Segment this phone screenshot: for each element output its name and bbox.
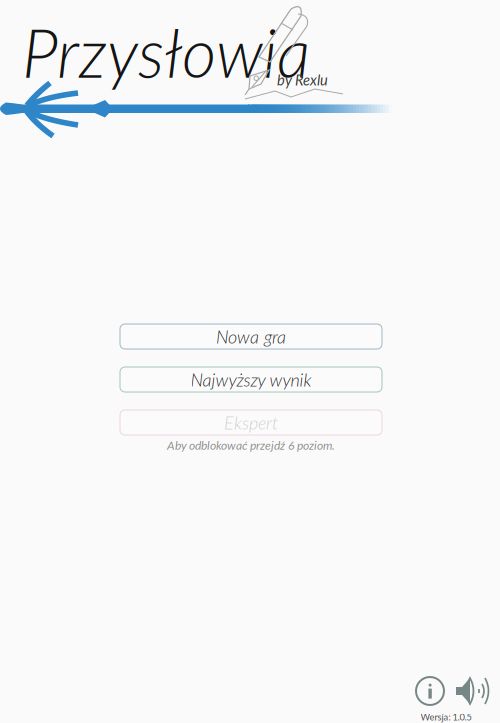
button[interactable]: Najwyższy wynik (120, 367, 382, 392)
staticText: Ekspert (224, 412, 278, 433)
button[interactable]: Ekspert (120, 410, 382, 435)
staticText: Najwyższy wynik (190, 369, 311, 390)
button[interactable]: Informacje (414, 675, 446, 707)
staticText: Aby odblokować przejdź 6 poziom. (167, 438, 335, 452)
button[interactable]: Dźwięk (455, 675, 493, 707)
staticText: Wersja: 1.0.5 (420, 711, 471, 723)
staticText: Nowa gra (216, 326, 286, 347)
staticText: by Rexlu (277, 71, 328, 89)
button[interactable]: Nowa gra (120, 324, 382, 349)
staticText: Przysłowia (22, 12, 310, 92)
